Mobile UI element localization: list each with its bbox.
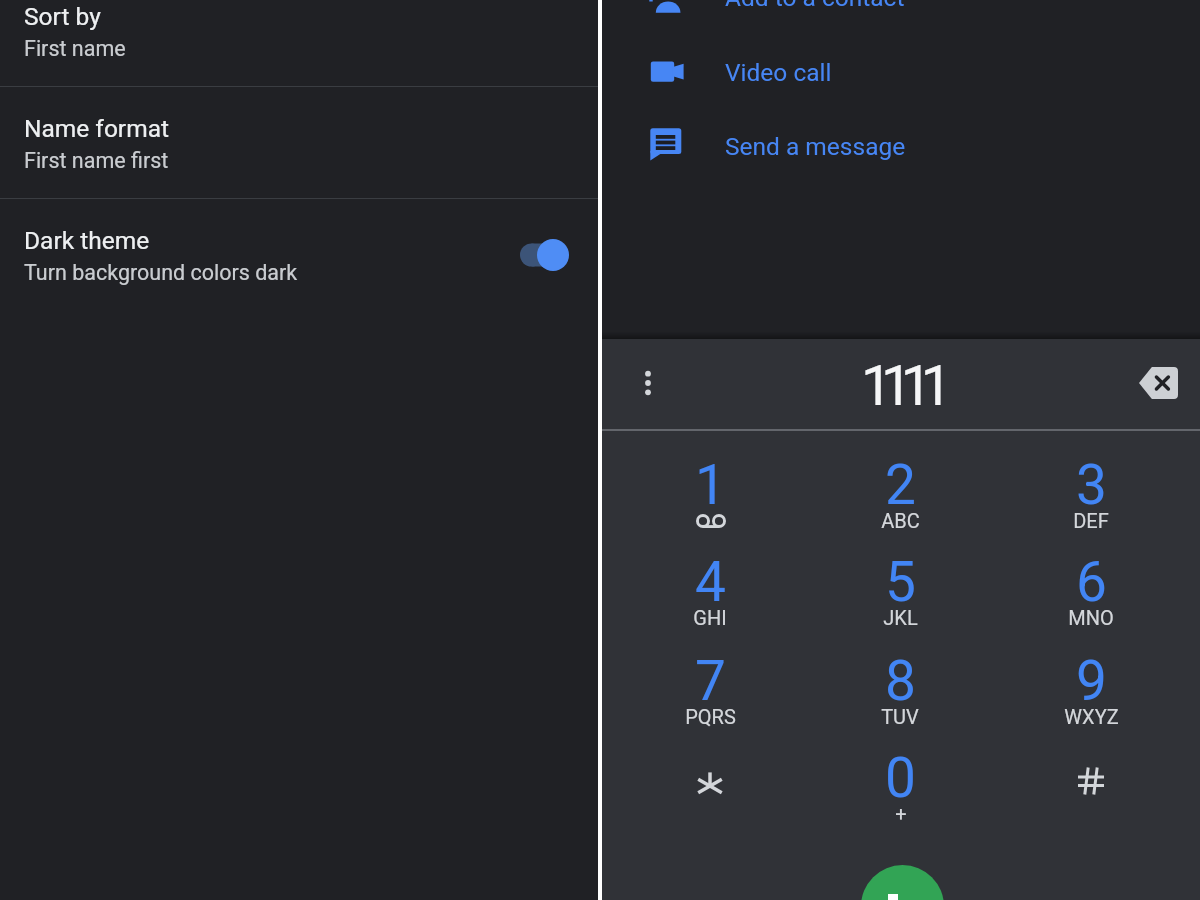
staticText: Dark theme [24,226,150,255]
button[interactable]: Backspace [1139,367,1178,399]
button[interactable]: 7 [615,649,805,746]
staticText: + [895,802,907,825]
staticText: DEF [1073,509,1109,532]
staticText: 1111 [861,354,941,418]
staticText: 4 [695,550,726,614]
button[interactable]: More options [629,365,665,405]
staticText: 8 [885,649,916,713]
staticText: 7 [695,649,726,713]
button[interactable]: 4 [615,550,805,647]
staticText: GHI [693,606,727,629]
button[interactable]: Name format [0,86,598,198]
button[interactable]: Send a message [602,109,1200,183]
staticText: 1 [695,453,726,517]
button[interactable]: 3 [996,453,1186,550]
staticText: PQRS [685,705,736,728]
button[interactable]: Video call [602,35,1200,109]
staticText: Send a message [725,132,906,161]
staticText: 3 [1076,453,1107,517]
staticText: MNO [1068,606,1114,629]
staticText: Video call [725,58,832,87]
button[interactable]: Add to a contact [602,0,1200,34]
button[interactable] [996,746,1186,843]
button[interactable]: 1 [615,453,805,550]
staticText: 2 [885,453,916,517]
staticText: 5 [885,550,916,614]
staticText: TUV [881,705,919,728]
button[interactable]: Call [861,865,944,900]
button[interactable]: 8 [805,649,995,746]
staticText: Name format [24,114,169,143]
button[interactable]: 6 [996,550,1186,647]
button[interactable]: Dark theme toggle [512,235,578,275]
button[interactable]: 2 [805,453,995,550]
staticText: Add to a contact [725,0,905,12]
staticText: 9 [1076,649,1107,713]
staticText: WXYZ [1064,705,1119,728]
button[interactable]: Sort by [0,0,598,86]
button[interactable]: 9 [996,649,1186,746]
staticText: ABC [881,509,920,532]
button[interactable]: Dark theme [0,198,598,310]
staticText: JKL [883,606,918,629]
staticText: First name [24,36,126,61]
staticText: Sort by [24,2,101,31]
button[interactable]: 0 [805,746,995,843]
staticText: 0 [885,746,916,810]
button[interactable] [615,746,805,843]
staticText: First name first [24,148,169,173]
staticText: Turn background colors dark [24,260,298,285]
button[interactable]: 5 [805,550,995,647]
staticText: 6 [1076,550,1107,614]
